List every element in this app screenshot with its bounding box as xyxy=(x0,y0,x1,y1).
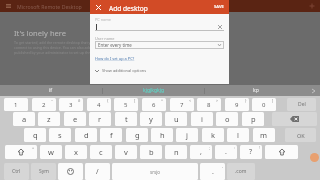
staticText: # xyxy=(78,98,81,103)
button[interactable]: q xyxy=(24,128,46,142)
staticText: Add desktop xyxy=(109,4,148,13)
button[interactable]: c xyxy=(90,145,112,159)
staticText: t xyxy=(125,114,128,124)
button[interactable]: kjgjkgkjg xyxy=(103,85,204,96)
button[interactable]: 6 xyxy=(142,98,166,111)
button[interactable]: w xyxy=(40,145,62,159)
button[interactable]: f xyxy=(100,128,122,142)
button[interactable]: Enter every time xyxy=(95,41,224,49)
staticText: Microsoft Remote Desktop xyxy=(17,3,82,10)
staticText: u xyxy=(174,114,179,124)
button[interactable]: . xyxy=(200,163,225,180)
button[interactable]: a xyxy=(13,112,35,126)
staticText: w xyxy=(48,147,54,157)
staticText: , xyxy=(200,147,202,157)
button[interactable]: , xyxy=(190,145,212,159)
button[interactable]: Clear xyxy=(216,23,224,31)
button[interactable]: More suggestions xyxy=(306,85,320,96)
staticText: ! xyxy=(259,145,260,150)
staticText: < xyxy=(189,98,192,103)
staticText: : xyxy=(234,145,235,150)
staticText: OK xyxy=(297,132,305,139)
staticText: z xyxy=(47,114,51,124)
button[interactable]: x xyxy=(65,145,87,159)
button[interactable]: OK xyxy=(285,128,316,142)
staticText: g xyxy=(135,130,140,140)
button[interactable]: SAVE xyxy=(209,1,229,13)
button[interactable]: kp xyxy=(205,85,306,96)
staticText: 6 xyxy=(152,101,156,109)
staticText: SAVE xyxy=(214,4,224,10)
button[interactable]: k xyxy=(202,128,224,142)
button[interactable]: if xyxy=(0,85,102,96)
button[interactable]: Shift xyxy=(5,145,37,159)
button[interactable]: h xyxy=(151,128,173,142)
button[interactable]: e xyxy=(64,112,86,126)
button[interactable]: 0 xyxy=(252,98,276,111)
button[interactable]: Menu xyxy=(0,0,17,12)
button[interactable]: 5 xyxy=(114,98,138,111)
staticText: 5 xyxy=(124,101,128,109)
button[interactable]: 7 xyxy=(170,98,194,111)
staticText: 2 xyxy=(42,101,46,109)
button[interactable]: Close xyxy=(91,0,105,14)
staticText: .com xyxy=(235,168,247,175)
button[interactable]: s xyxy=(49,128,71,142)
staticText: c xyxy=(99,147,103,157)
button[interactable]: 8 xyxy=(197,98,221,111)
staticText: } xyxy=(245,98,247,103)
button[interactable]: Backspace xyxy=(272,112,317,126)
button[interactable]: t xyxy=(115,112,137,126)
staticText: b xyxy=(149,147,154,157)
button[interactable]: How do I set up a PC? xyxy=(95,56,135,61)
staticText: ? xyxy=(249,147,253,157)
staticText: To get started, add the remote desktop t… xyxy=(14,40,122,55)
button[interactable]: / xyxy=(85,163,110,180)
staticText: o xyxy=(225,114,230,124)
button[interactable]: n xyxy=(165,145,187,159)
button[interactable]: v xyxy=(115,145,137,159)
button[interactable]: 9 xyxy=(225,98,249,111)
button[interactable]: .com xyxy=(227,163,255,180)
staticText: d xyxy=(84,130,89,140)
button[interactable]: l xyxy=(227,128,249,142)
staticText: r xyxy=(98,114,102,124)
button[interactable]: 1 xyxy=(4,98,28,111)
staticText: / xyxy=(96,167,99,177)
button[interactable]: i xyxy=(191,112,213,126)
button[interactable]: . xyxy=(215,145,237,159)
button[interactable]: p xyxy=(242,112,264,126)
button[interactable]: Emoji xyxy=(58,163,83,180)
staticText: v xyxy=(124,147,128,157)
button[interactable]: Shift xyxy=(265,145,298,159)
button[interactable]: Add xyxy=(304,0,320,12)
staticText: a xyxy=(22,114,27,124)
staticText: ] xyxy=(272,98,274,103)
button[interactable]: g xyxy=(126,128,148,142)
button[interactable]: d xyxy=(75,128,97,142)
staticText: Enter every time xyxy=(98,42,132,48)
button[interactable]: 3 xyxy=(59,98,83,111)
staticText: 1 xyxy=(14,101,18,109)
staticText: y xyxy=(149,114,153,124)
button[interactable]: Show additional options xyxy=(95,68,146,73)
button[interactable]: ? xyxy=(240,145,262,159)
button[interactable]: y xyxy=(140,112,162,126)
button[interactable]: r xyxy=(89,112,111,126)
button[interactable]: srsjo xyxy=(112,163,198,180)
button[interactable]: 2 xyxy=(32,98,56,111)
button[interactable]: o xyxy=(216,112,238,126)
staticText: 3 xyxy=(69,101,73,109)
button[interactable]: u xyxy=(165,112,187,126)
staticText: n xyxy=(174,147,179,157)
button[interactable]: Ctrl xyxy=(4,163,29,180)
button[interactable]: z xyxy=(38,112,60,126)
staticText: 9 xyxy=(235,101,239,109)
staticText: Del xyxy=(298,101,306,108)
button[interactable]: Del xyxy=(287,98,316,111)
button[interactable]: j xyxy=(176,128,198,142)
button[interactable]: Sym xyxy=(31,163,56,180)
button[interactable]: b xyxy=(140,145,162,159)
button[interactable]: 4 xyxy=(87,98,111,111)
button[interactable]: m xyxy=(253,128,275,142)
